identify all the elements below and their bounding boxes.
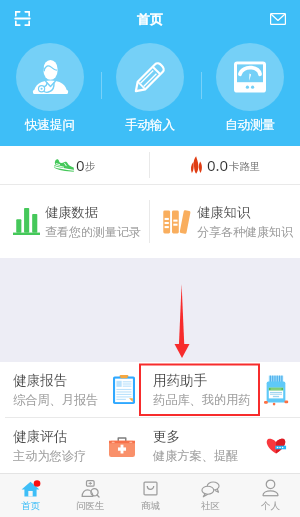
button[interactable]: 0 bbox=[0, 146, 149, 184]
staticText: 社区 bbox=[201, 500, 220, 512]
button[interactable]: 健康报告 bbox=[0, 362, 140, 417]
button[interactable]: 个人 bbox=[240, 473, 300, 517]
staticText: 问医生 bbox=[76, 500, 105, 512]
staticText: 个人 bbox=[261, 500, 280, 512]
staticText: 快速提问 bbox=[25, 117, 75, 133]
staticText: 卡路里 bbox=[229, 160, 261, 173]
button[interactable]: 健康评估 bbox=[0, 418, 140, 473]
button[interactable]: Scan QR code bbox=[0, 0, 44, 37]
staticText: 分享各种健康知识 bbox=[197, 224, 293, 239]
button[interactable]: 健康数据 bbox=[0, 185, 149, 258]
staticText: 药品库、我的用药 bbox=[153, 392, 251, 407]
button[interactable]: 0.0 bbox=[150, 146, 300, 184]
staticText: 首页 bbox=[21, 500, 40, 512]
staticText: 主动为您诊疗 bbox=[13, 448, 87, 463]
button[interactable]: 健康知识 bbox=[150, 185, 300, 258]
staticText: 健康数据 bbox=[45, 204, 99, 221]
staticText: 商城 bbox=[141, 500, 160, 512]
button[interactable]: 快速提问 bbox=[0, 37, 100, 133]
staticText: 查看您的测量记录 bbox=[45, 224, 141, 239]
staticText: 步 bbox=[85, 160, 96, 173]
button[interactable]: Messages bbox=[256, 0, 300, 37]
staticText: 0.0 bbox=[207, 155, 229, 175]
staticText: 健康评估 bbox=[13, 428, 68, 445]
button[interactable]: 用药助手 bbox=[140, 362, 300, 417]
staticText: 健康报告 bbox=[13, 372, 68, 389]
button[interactable]: 更多 bbox=[140, 418, 300, 473]
button[interactable]: 手动输入 bbox=[100, 37, 200, 133]
button[interactable]: 问医生 bbox=[60, 473, 120, 517]
button[interactable]: 首页 bbox=[0, 473, 60, 517]
staticText: 健康知识 bbox=[197, 204, 251, 221]
staticText: 手动输入 bbox=[125, 117, 175, 133]
staticText: 综合周、月报告 bbox=[13, 392, 99, 407]
button[interactable]: 自动测量 bbox=[200, 37, 300, 133]
button[interactable]: 商城 bbox=[120, 473, 180, 517]
staticText: 更多 bbox=[153, 428, 181, 445]
staticText: 健康方案、提醒 bbox=[153, 448, 239, 463]
staticText: 0 bbox=[76, 155, 85, 175]
staticText: 自动测量 bbox=[225, 117, 275, 133]
staticText: 首页 bbox=[137, 11, 163, 27]
staticText: 用药助手 bbox=[153, 372, 208, 389]
button[interactable]: 社区 bbox=[180, 473, 240, 517]
